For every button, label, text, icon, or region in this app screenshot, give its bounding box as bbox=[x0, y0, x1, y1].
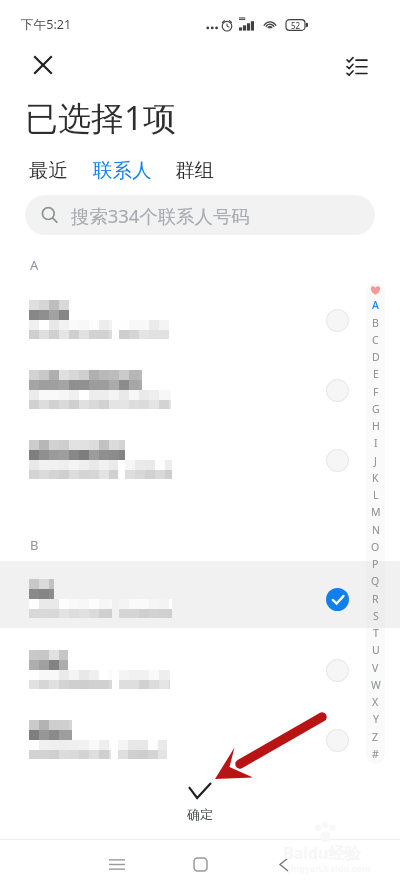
staticText: I bbox=[374, 436, 378, 450]
button[interactable]: Select all bbox=[338, 46, 376, 84]
staticText: U bbox=[372, 643, 380, 657]
staticText: N bbox=[372, 523, 380, 537]
button[interactable] bbox=[0, 282, 400, 349]
staticText: H bbox=[372, 419, 380, 433]
button[interactable]: Back bbox=[264, 844, 304, 884]
button[interactable] bbox=[0, 352, 400, 419]
button[interactable]: 联系人 bbox=[93, 158, 152, 183]
staticText: B bbox=[372, 316, 379, 330]
staticText: 群组 bbox=[175, 158, 214, 183]
staticText: S bbox=[373, 609, 379, 623]
staticText: P bbox=[372, 557, 379, 571]
staticText: 确定 bbox=[187, 806, 213, 822]
button[interactable]: 搜索334个联系人号码 bbox=[25, 195, 375, 235]
staticText: 搜索334个联系人号码 bbox=[71, 203, 250, 228]
staticText: A bbox=[372, 298, 379, 312]
staticText: D bbox=[372, 350, 380, 364]
staticText: E bbox=[373, 367, 379, 381]
button[interactable]: Recents bbox=[97, 844, 137, 884]
button[interactable] bbox=[0, 632, 400, 699]
button[interactable]: 最近 bbox=[29, 158, 68, 183]
button[interactable]: 确定 bbox=[160, 783, 240, 831]
staticText: # bbox=[372, 747, 379, 761]
staticText: Q bbox=[371, 574, 380, 588]
button[interactable]: 群组 bbox=[175, 158, 214, 183]
staticText: Z bbox=[372, 730, 379, 744]
staticText: G bbox=[372, 402, 380, 416]
staticText: C bbox=[372, 333, 379, 347]
staticText: K bbox=[372, 471, 379, 485]
staticText: R bbox=[372, 592, 379, 606]
staticText: M bbox=[371, 505, 381, 519]
staticText: 52 bbox=[291, 20, 301, 31]
button[interactable]: Home bbox=[180, 844, 220, 884]
staticText: V bbox=[372, 661, 379, 675]
staticText: F bbox=[373, 385, 379, 399]
staticText: A bbox=[30, 256, 39, 274]
staticText: X bbox=[372, 695, 379, 709]
staticText: B bbox=[30, 536, 39, 554]
button[interactable]: Alphabet index bbox=[366, 282, 385, 764]
staticText: 下午5:21 bbox=[21, 16, 72, 33]
staticText: 联系人 bbox=[93, 158, 152, 183]
staticText: O bbox=[371, 540, 380, 554]
button[interactable]: Close bbox=[24, 46, 62, 84]
staticText: J bbox=[374, 454, 377, 468]
staticText: L bbox=[373, 488, 379, 502]
button[interactable] bbox=[0, 422, 400, 489]
staticText: Y bbox=[373, 712, 379, 726]
staticText: 已选择1项 bbox=[25, 95, 176, 140]
button[interactable] bbox=[0, 702, 400, 769]
button[interactable] bbox=[0, 561, 400, 628]
staticText: 最近 bbox=[29, 158, 68, 183]
staticText: Baidu经验 bbox=[283, 842, 361, 864]
staticText: T bbox=[373, 626, 379, 640]
staticText: W bbox=[371, 678, 381, 692]
